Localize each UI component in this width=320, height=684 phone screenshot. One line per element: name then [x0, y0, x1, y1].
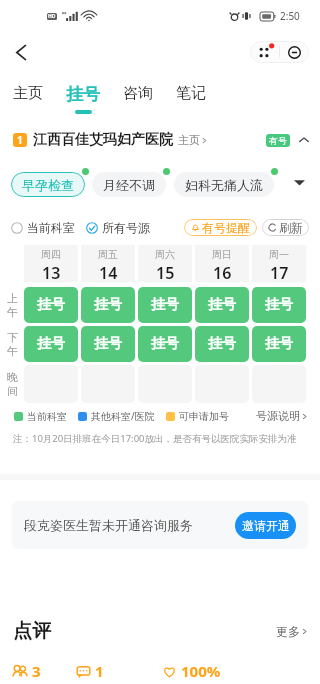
staticText: 3	[32, 661, 41, 681]
button[interactable]: 1	[0, 118, 320, 155]
button[interactable]: 挂号	[81, 326, 135, 362]
staticText: 间	[7, 384, 18, 398]
button[interactable]: 挂号	[252, 287, 306, 323]
button[interactable]: 有号提醒	[184, 219, 257, 236]
staticText: 挂号	[208, 335, 236, 353]
button[interactable]: 笔记	[176, 84, 206, 103]
button[interactable]: 挂号	[138, 326, 192, 362]
button[interactable]: 刷新	[262, 219, 309, 236]
staticText: 有号提醒	[202, 220, 250, 235]
staticText: 17	[270, 262, 289, 282]
staticText: 有号	[269, 135, 287, 146]
button[interactable]: 月经不调	[92, 172, 166, 197]
staticText: 早孕检查	[22, 177, 74, 193]
staticText: 挂号	[151, 335, 179, 353]
staticText: 晚	[7, 370, 18, 384]
staticText: 主页	[13, 84, 43, 103]
staticText: 挂号	[37, 296, 65, 314]
staticText: 月经不调	[103, 177, 155, 193]
staticText: 江西百佳艾玛妇产医院	[33, 131, 173, 149]
button[interactable]: Expand filters	[289, 172, 309, 192]
staticText: 可申请加号	[179, 410, 229, 423]
button[interactable]: 当前科室	[11, 220, 75, 235]
button[interactable]: 挂号	[138, 287, 192, 323]
staticText: 14	[99, 262, 118, 282]
staticText: 挂号	[94, 335, 122, 353]
button[interactable]: 挂号	[24, 326, 78, 362]
staticText: 周一	[269, 248, 289, 261]
staticText: 上	[7, 291, 18, 305]
staticText: 主页	[178, 133, 200, 147]
staticText: 刷新	[279, 220, 303, 235]
staticText: 点评	[13, 619, 51, 643]
staticText: 周日	[212, 248, 232, 261]
button[interactable]: 咨询	[123, 84, 176, 103]
button[interactable]: 邀请开通	[235, 512, 296, 539]
staticText: 挂号	[208, 296, 236, 314]
staticText: 注：10月20日排班在今日17:00放出，是否有号以医院实际安排为准	[13, 432, 297, 445]
staticText: 邀请开通	[242, 518, 290, 533]
staticText: 1	[17, 133, 23, 147]
staticText: 周六	[155, 248, 175, 261]
staticText: 1	[95, 661, 104, 681]
staticText: 2:50	[280, 9, 300, 23]
staticText: 周四	[41, 248, 61, 261]
staticText: 挂号	[37, 335, 65, 353]
staticText: 挂号	[94, 296, 122, 314]
staticText: 其他科室/医院	[91, 409, 155, 423]
button[interactable]: 挂号	[81, 287, 135, 323]
staticText: HD	[48, 13, 56, 20]
staticText: 更多	[276, 624, 300, 639]
button[interactable]: 所有号源	[86, 220, 150, 235]
button[interactable]: 早孕检查	[11, 172, 85, 197]
button[interactable]: Menu	[250, 41, 279, 63]
staticText: 挂号	[66, 84, 100, 105]
button[interactable]: 妇科无痛人流	[174, 172, 274, 197]
button[interactable]: 挂号	[66, 84, 123, 114]
staticText: 挂号	[151, 296, 179, 314]
staticText: 当前科室	[27, 410, 67, 423]
staticText: 所有号源	[102, 220, 150, 235]
button[interactable]: 更多	[276, 624, 309, 639]
button[interactable]: 号源说明	[256, 409, 309, 423]
staticText: 午	[7, 305, 18, 319]
button[interactable]: 挂号	[252, 326, 306, 362]
staticText: 咨询	[123, 84, 153, 103]
button[interactable]: Close	[280, 41, 309, 63]
staticText: 周五	[98, 248, 118, 261]
button[interactable]: 挂号	[24, 287, 78, 323]
staticText: 13	[42, 262, 61, 282]
staticText: 16	[213, 262, 232, 282]
staticText: 号源说明	[256, 409, 300, 423]
staticText: 100%	[181, 661, 221, 681]
staticText: 挂号	[265, 335, 293, 353]
staticText: 当前科室	[27, 220, 75, 235]
button[interactable]: 挂号	[195, 326, 249, 362]
staticText: 妇科无痛人流	[185, 177, 263, 193]
button[interactable]: 挂号	[195, 287, 249, 323]
staticText: 15	[156, 262, 175, 282]
button[interactable]: 主页	[13, 84, 66, 103]
staticText: 午	[7, 344, 18, 358]
staticText: 段克姿医生暂未开通咨询服务	[24, 517, 193, 533]
button[interactable]: Back	[4, 35, 38, 69]
staticText: 笔记	[176, 84, 206, 103]
staticText: 挂号	[265, 296, 293, 314]
staticText: 下	[7, 330, 18, 344]
